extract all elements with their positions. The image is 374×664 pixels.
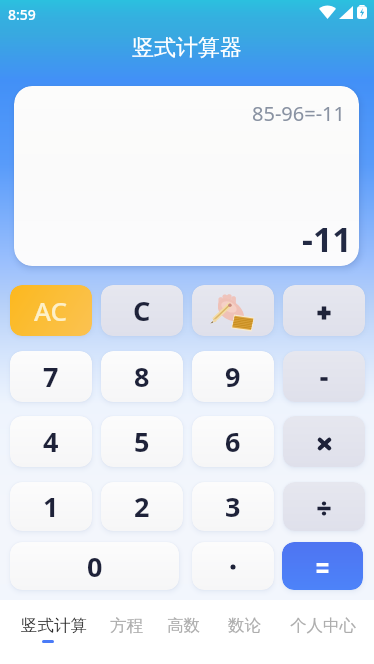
staticText: 1 (43, 488, 59, 525)
staticText: 高数 (167, 615, 200, 636)
button[interactable]: AC (10, 285, 92, 336)
staticText: AC (34, 293, 68, 328)
staticText: C (133, 292, 151, 329)
button[interactable]: 8 (101, 351, 183, 402)
button[interactable]: 4 (10, 416, 92, 467)
staticText: -11 (302, 216, 352, 262)
staticText: 8 (134, 358, 150, 395)
staticText: 85-96=-11 (252, 100, 345, 127)
staticText: 竖式计算 (21, 615, 87, 636)
staticText: 3 (225, 488, 241, 525)
button[interactable]: 3 (192, 482, 274, 531)
button[interactable]: 6 (192, 416, 274, 467)
staticText: 竖式计算器 (132, 34, 242, 62)
staticText: 0 (87, 548, 103, 585)
staticText: 个人中心 (290, 615, 356, 636)
staticText: 4 (43, 423, 59, 460)
staticText: 方程 (110, 615, 143, 636)
staticText: 2 (134, 488, 150, 525)
button[interactable]: 2 (101, 482, 183, 531)
button[interactable]: Equals (282, 542, 363, 590)
staticText: 8:59 (8, 5, 36, 24)
staticText: 6 (225, 423, 241, 460)
staticText: 5 (134, 423, 150, 460)
button[interactable]: 竖式计算 (16, 615, 92, 657)
button[interactable]: 数论 (218, 615, 270, 657)
button[interactable]: Minus (283, 351, 365, 402)
button[interactable]: C (101, 285, 183, 336)
button[interactable] (192, 542, 274, 590)
button[interactable]: 高数 (157, 615, 209, 657)
button[interactable]: 9 (192, 351, 274, 402)
button[interactable]: Handwriting input (192, 285, 274, 336)
button[interactable]: 个人中心 (285, 615, 361, 657)
button[interactable]: Plus (283, 285, 365, 336)
button[interactable]: 5 (101, 416, 183, 467)
button[interactable]: 0 (10, 542, 179, 590)
staticText: 数论 (228, 615, 261, 636)
staticText: 7 (43, 358, 59, 395)
staticText: 9 (225, 358, 241, 395)
button[interactable]: Divide (283, 482, 365, 531)
button[interactable]: 方程 (100, 615, 152, 657)
button[interactable]: 1 (10, 482, 92, 531)
button[interactable]: 7 (10, 351, 92, 402)
button[interactable]: Multiply (283, 416, 365, 467)
